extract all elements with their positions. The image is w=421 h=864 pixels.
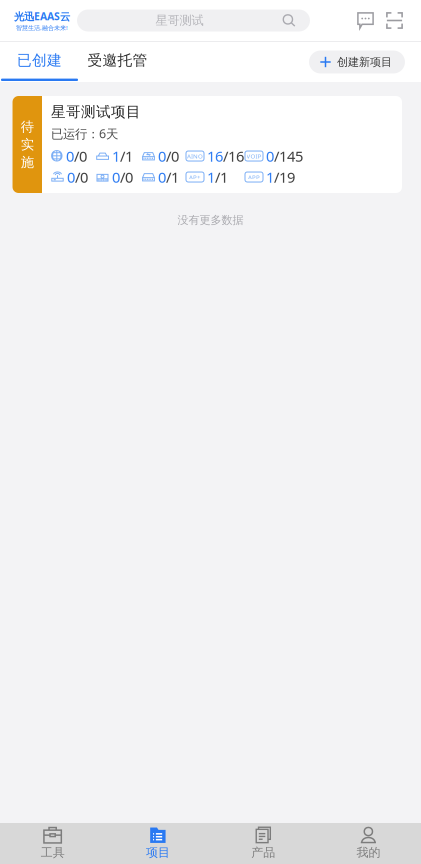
staticText: 已运行：6天: [51, 125, 118, 142]
staticText: 1: [266, 167, 274, 187]
staticText: /145: [274, 146, 303, 166]
staticText: 星哥测试: [155, 13, 203, 28]
staticText: AINO: [187, 152, 203, 160]
staticText: 智慧生活,融合未来!: [16, 23, 68, 32]
staticText: 1: [112, 146, 120, 166]
staticText: AP+: [189, 173, 201, 181]
staticText: /0: [75, 167, 88, 187]
staticText: 已创建: [17, 51, 62, 70]
staticText: 0: [112, 167, 120, 187]
button[interactable]: 创建新项目: [309, 50, 405, 73]
staticText: 产品: [251, 845, 275, 860]
button[interactable]: 星哥测试: [77, 9, 310, 31]
staticText: /0: [74, 146, 87, 166]
staticText: 0: [266, 146, 274, 166]
staticText: 0: [67, 167, 75, 187]
staticText: VOIP: [246, 152, 261, 160]
staticText: /19: [274, 167, 295, 187]
staticText: 创建新项目: [337, 55, 392, 69]
button[interactable]: 工具: [0, 822, 105, 864]
staticText: /0: [120, 167, 133, 187]
staticText: 光迅EAAS云: [14, 9, 70, 23]
button[interactable]: 光迅EAAS云: [0, 9, 77, 32]
button[interactable]: Scan: [376, 12, 421, 29]
staticText: /16: [223, 146, 244, 166]
staticText: 待: [21, 118, 34, 135]
staticText: 实: [21, 136, 34, 153]
button[interactable]: 产品: [210, 822, 316, 864]
staticText: 星哥测试项目: [51, 103, 141, 121]
staticText: /0: [166, 146, 179, 166]
button[interactable]: 受邀托管: [79, 42, 156, 82]
staticText: 0: [66, 146, 74, 166]
button[interactable]: Messages: [341, 12, 376, 29]
staticText: 16: [207, 146, 223, 166]
staticText: /1: [166, 167, 179, 187]
staticText: 工具: [41, 845, 65, 860]
staticText: 没有更多数据: [177, 213, 243, 227]
staticText: /1: [120, 146, 133, 166]
staticText: 施: [21, 154, 34, 171]
staticText: 1: [207, 167, 215, 187]
staticText: APP: [248, 173, 260, 181]
staticText: /1: [215, 167, 228, 187]
staticText: 项目: [146, 845, 170, 860]
staticText: 0: [158, 146, 166, 166]
staticText: 0: [158, 167, 166, 187]
button[interactable]: 项目: [105, 822, 210, 864]
staticText: 受邀托管: [87, 51, 147, 70]
button[interactable]: 已创建: [0, 42, 79, 82]
button[interactable]: 我的: [316, 822, 421, 864]
staticText: 我的: [356, 845, 380, 860]
